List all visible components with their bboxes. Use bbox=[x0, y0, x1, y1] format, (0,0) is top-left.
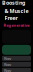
button[interactable]: Row bbox=[2, 68, 31, 72]
button[interactable]: Row bbox=[2, 62, 31, 67]
staticText: Awareness Boosting bbox=[2, 0, 31, 6]
staticText: Regenerative bbox=[3, 22, 29, 28]
button[interactable]: Row bbox=[2, 56, 31, 61]
staticText: & Muscle Freer bbox=[4, 7, 28, 21]
staticText: Row bbox=[4, 56, 11, 61]
staticText: Row bbox=[4, 68, 11, 72]
staticText: Row bbox=[4, 62, 11, 67]
